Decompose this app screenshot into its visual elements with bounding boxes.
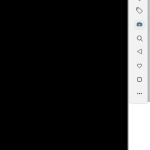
button[interactable]: Favorite xyxy=(132,59,146,72)
button[interactable]: Crop xyxy=(132,73,146,86)
button[interactable]: More options xyxy=(132,87,146,100)
button[interactable]: Search xyxy=(132,32,146,45)
button[interactable]: Edit xyxy=(132,0,146,4)
button[interactable]: Camera xyxy=(132,18,146,31)
button[interactable]: Share xyxy=(132,45,146,58)
button[interactable]: Tag xyxy=(132,4,146,17)
